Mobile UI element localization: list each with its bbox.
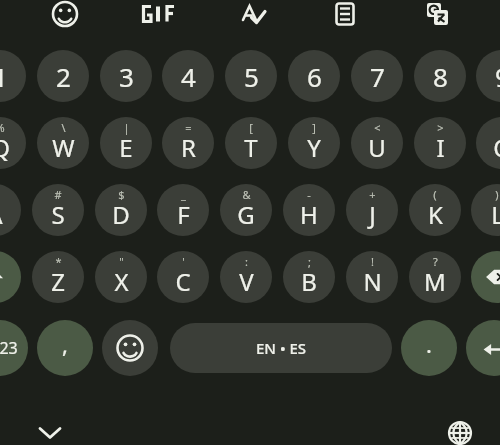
button[interactable]: $ bbox=[95, 184, 147, 236]
staticText: [ bbox=[249, 120, 253, 135]
button[interactable]: Enter bbox=[466, 320, 500, 376]
staticText: J bbox=[369, 198, 376, 231]
button[interactable]: 5 bbox=[225, 50, 277, 102]
staticText: ' bbox=[182, 254, 185, 269]
button[interactable]: ) bbox=[471, 184, 500, 236]
staticText: C bbox=[175, 265, 191, 298]
button[interactable]: { bbox=[476, 117, 500, 169]
button[interactable]: \ bbox=[37, 117, 89, 169]
staticText: _ bbox=[181, 187, 186, 202]
staticText: 9 bbox=[495, 59, 500, 94]
button[interactable]: Translate bbox=[412, 0, 462, 36]
button[interactable]: # bbox=[32, 184, 84, 236]
button[interactable]: Emoji bbox=[102, 320, 158, 376]
staticText: K bbox=[428, 198, 443, 231]
button[interactable]: | bbox=[100, 117, 152, 169]
button[interactable]: + bbox=[346, 184, 398, 236]
staticText: 2 bbox=[56, 59, 71, 94]
staticText: E bbox=[119, 131, 133, 164]
button[interactable]: Change language bbox=[434, 406, 486, 444]
staticText: < bbox=[374, 120, 381, 135]
staticText: I bbox=[436, 131, 445, 164]
staticText: . bbox=[426, 329, 432, 359]
button[interactable]: 6 bbox=[288, 50, 340, 102]
staticText: : bbox=[245, 254, 248, 269]
staticText: W bbox=[52, 131, 75, 164]
staticText: Z bbox=[51, 265, 65, 298]
staticText: R bbox=[181, 131, 196, 164]
staticText: + bbox=[369, 187, 376, 202]
staticText: # bbox=[54, 187, 62, 202]
staticText: L bbox=[491, 198, 500, 231]
staticText: Y bbox=[307, 131, 321, 164]
staticText: G bbox=[237, 198, 255, 231]
button[interactable]: & bbox=[220, 184, 272, 236]
button[interactable]: ?123 bbox=[0, 320, 28, 376]
button[interactable]: ] bbox=[288, 117, 340, 169]
button[interactable]: Backspace bbox=[471, 251, 500, 303]
button[interactable]: 9 bbox=[476, 50, 500, 102]
button[interactable]: Hide keyboard bbox=[24, 406, 76, 444]
button[interactable]: GIF bbox=[133, 0, 187, 36]
button[interactable]: 3 bbox=[100, 50, 152, 102]
button[interactable]: Clipboard bbox=[320, 0, 370, 36]
button[interactable]: . bbox=[401, 320, 457, 376]
button[interactable]: ? bbox=[409, 251, 461, 303]
staticText: % bbox=[0, 120, 5, 135]
button[interactable]: * bbox=[32, 251, 84, 303]
staticText: N bbox=[363, 265, 382, 298]
staticText: F bbox=[177, 198, 190, 231]
button[interactable]: 4 bbox=[162, 50, 214, 102]
staticText: A bbox=[0, 198, 3, 231]
button[interactable]: @ bbox=[0, 184, 21, 236]
staticText: O bbox=[493, 131, 500, 164]
staticText: 1 bbox=[0, 59, 8, 94]
staticText: H bbox=[300, 198, 318, 231]
staticText: = bbox=[185, 120, 192, 135]
staticText: 5 bbox=[244, 59, 259, 94]
staticText: $ bbox=[118, 187, 125, 202]
button[interactable]: 2 bbox=[37, 50, 89, 102]
button[interactable]: - bbox=[283, 184, 335, 236]
button[interactable]: EN • ES bbox=[170, 323, 392, 373]
button[interactable]: 1 bbox=[0, 50, 26, 102]
staticText: " bbox=[119, 254, 124, 269]
staticText: ] bbox=[312, 120, 316, 135]
staticText: | bbox=[123, 120, 130, 135]
staticText: EN • ES bbox=[256, 338, 307, 358]
button[interactable]: 7 bbox=[351, 50, 403, 102]
button[interactable]: ; bbox=[283, 251, 335, 303]
staticText: T bbox=[244, 131, 258, 164]
button[interactable]: > bbox=[414, 117, 466, 169]
staticText: 3 bbox=[119, 59, 134, 94]
button[interactable]: ( bbox=[409, 184, 461, 236]
staticText: ! bbox=[371, 254, 374, 269]
staticText: * bbox=[55, 254, 62, 269]
staticText: S bbox=[51, 198, 65, 231]
button[interactable]: [ bbox=[225, 117, 277, 169]
staticText: ?123 bbox=[0, 337, 18, 359]
staticText: Q bbox=[0, 131, 10, 164]
button[interactable]: 8 bbox=[414, 50, 466, 102]
button[interactable]: Shift bbox=[0, 251, 21, 303]
button[interactable]: Emoji bbox=[40, 0, 90, 36]
button[interactable]: ' bbox=[157, 251, 209, 303]
staticText: B bbox=[301, 265, 317, 298]
button[interactable]: Spell check bbox=[228, 0, 278, 36]
button[interactable]: : bbox=[220, 251, 272, 303]
staticText: M bbox=[424, 265, 446, 298]
staticText: 6 bbox=[307, 59, 322, 94]
staticText: , bbox=[62, 329, 68, 359]
staticText: ? bbox=[433, 254, 438, 269]
button[interactable]: _ bbox=[157, 184, 209, 236]
staticText: ( bbox=[433, 187, 437, 202]
button[interactable]: ! bbox=[346, 251, 398, 303]
staticText: \ bbox=[61, 120, 66, 135]
button[interactable]: , bbox=[37, 320, 93, 376]
button[interactable]: = bbox=[162, 117, 214, 169]
button[interactable]: < bbox=[351, 117, 403, 169]
staticText: 4 bbox=[181, 59, 196, 94]
staticText: & bbox=[242, 187, 251, 202]
button[interactable]: % bbox=[0, 117, 26, 169]
button[interactable]: " bbox=[95, 251, 147, 303]
